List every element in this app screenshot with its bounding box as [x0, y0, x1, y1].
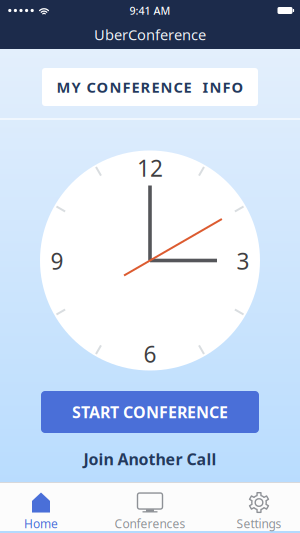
- staticText: Join Another Call: [83, 448, 216, 470]
- staticText: Home: [24, 515, 58, 531]
- button[interactable]: Home: [0, 489, 82, 533]
- staticText: Conferences: [114, 515, 185, 531]
- staticText: Settings: [236, 515, 281, 531]
- staticText: UberConference: [94, 25, 206, 44]
- staticText: 3: [236, 246, 249, 276]
- button[interactable]: M Y C O N F E R E N C E I N F O: [42, 68, 258, 106]
- staticText: 12: [137, 153, 163, 183]
- staticText: M Y C O N F E R E N C E I N F O: [56, 77, 243, 97]
- staticText: 6: [143, 339, 156, 369]
- staticText: 9:41 AM: [129, 3, 170, 18]
- button[interactable]: Join Another Call: [83, 448, 216, 470]
- staticText: START CONFERENCE: [72, 401, 228, 423]
- staticText: 9: [50, 246, 63, 276]
- button[interactable]: Conferences: [82, 489, 218, 533]
- button[interactable]: START CONFERENCE: [41, 391, 259, 433]
- button[interactable]: Settings: [218, 489, 300, 533]
